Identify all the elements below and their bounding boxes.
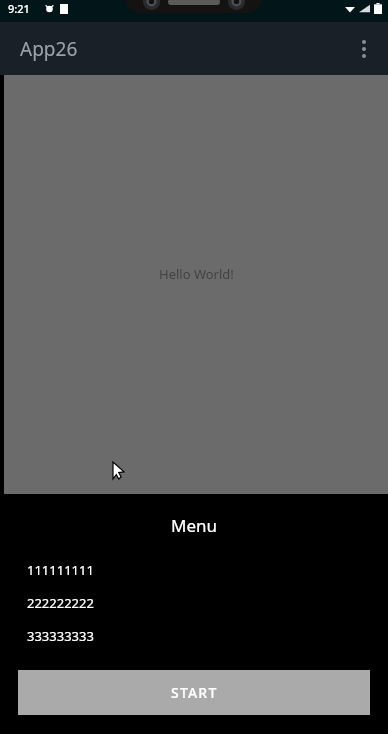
staticText: App26	[20, 36, 78, 62]
staticText: START	[171, 683, 218, 702]
staticText: Menu	[0, 514, 388, 537]
button[interactable]: START	[18, 670, 370, 715]
staticText: 9:21	[8, 1, 30, 16]
button[interactable]: 333333333	[0, 619, 388, 652]
staticText: 111111111	[27, 561, 94, 579]
button[interactable]: 111111111	[0, 553, 388, 586]
staticText: 333333333	[27, 627, 94, 645]
staticText: Hello World!	[159, 265, 234, 283]
button[interactable]: 222222222	[0, 586, 388, 619]
staticText: 222222222	[27, 594, 94, 612]
button[interactable]: More options	[340, 25, 388, 73]
